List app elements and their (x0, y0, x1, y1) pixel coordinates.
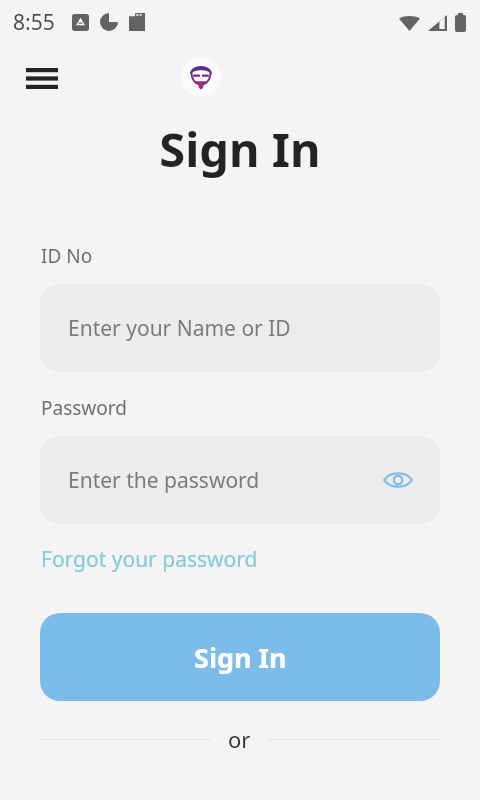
staticText: Forgot your password (41, 545, 258, 574)
staticText: or (228, 724, 251, 754)
button[interactable]: Show password (378, 460, 418, 500)
staticText: 8:55 (13, 8, 55, 37)
staticText: Sign In (194, 639, 287, 676)
button[interactable]: Sign In (40, 613, 440, 701)
button[interactable]: Enter the password (40, 436, 440, 524)
staticText: Password (41, 395, 127, 421)
staticText: Sign In (0, 117, 480, 181)
button[interactable]: Menu (11, 55, 73, 101)
staticText: Enter your Name or ID (68, 314, 418, 343)
button[interactable]: Enter your Name or ID (40, 284, 440, 372)
staticText: Enter the password (68, 466, 378, 495)
button[interactable]: Profile logo (181, 57, 221, 97)
button[interactable]: Forgot your password (41, 543, 264, 576)
staticText: ID No (41, 243, 93, 269)
